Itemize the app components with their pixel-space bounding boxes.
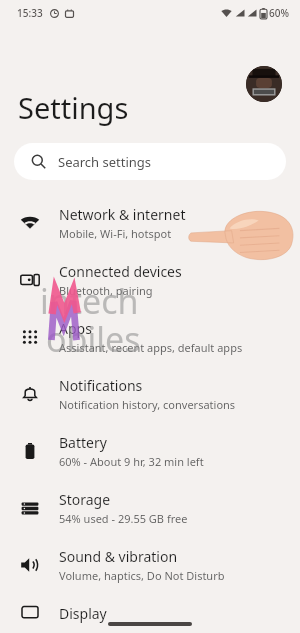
staticText: intech — [40, 278, 139, 324]
button[interactable]: Battery — [0, 422, 300, 479]
button[interactable]: Connected devices — [0, 251, 300, 308]
staticText: 60% - About 9 hr, 32 min left — [59, 454, 204, 469]
staticText: Mobile, Wi-Fi, hotspot — [59, 226, 172, 241]
staticText: Network & internet — [59, 205, 186, 224]
staticText: Display — [59, 604, 107, 623]
staticText: Volume, haptics, Do Not Disturb — [59, 568, 225, 583]
staticText: Notification history, conversations — [59, 397, 236, 412]
staticText: Battery — [59, 433, 107, 452]
button[interactable]: Display — [0, 593, 300, 633]
button[interactable]: Sound & vibration — [0, 536, 300, 593]
staticText: Settings — [18, 88, 129, 127]
staticText: Connected devices — [59, 262, 182, 281]
staticText: Notifications — [59, 376, 143, 395]
staticText: Assistant, recent apps, default apps — [59, 340, 243, 355]
button[interactable]: Notifications — [0, 365, 300, 422]
staticText: obiles — [46, 316, 141, 362]
button[interactable]: Network & internet — [0, 194, 300, 251]
staticText: Storage — [59, 490, 111, 509]
button[interactable]: Storage — [0, 479, 300, 536]
button[interactable]: Search settings — [14, 143, 286, 180]
staticText: 60% — [269, 6, 289, 20]
staticText: 54% used - 29.55 GB free — [59, 511, 188, 526]
staticText: 15:33 — [17, 6, 43, 20]
button[interactable]: Apps — [0, 308, 300, 365]
staticText: Apps — [59, 319, 92, 338]
staticText: Bluetooth, pairing — [59, 283, 153, 298]
button[interactable]: Account — [246, 66, 282, 102]
staticText: Sound & vibration — [59, 547, 178, 566]
staticText: Search settings — [58, 153, 152, 171]
